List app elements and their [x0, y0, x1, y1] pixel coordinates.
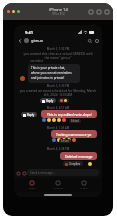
staticText: Send a message... [30, 171, 56, 175]
button[interactable]: Profile [75, 180, 93, 192]
staticText: Profile [80, 186, 88, 189]
staticText: you created this chat as a virtual GENES… [17, 52, 99, 60]
staticText: Reply [27, 113, 35, 117]
staticText: Edited [61, 139, 69, 143]
button[interactable]: Chats [23, 180, 41, 192]
button[interactable]: Edited [59, 139, 71, 143]
staticText: March 4, 1:46 AM [14, 126, 102, 130]
staticText: March 3, 1:02 PM [14, 47, 102, 51]
button[interactable]: Edited [69, 119, 81, 123]
staticText: March 4, 4:51 AM [14, 106, 102, 110]
button[interactable]: Close window [7, 10, 10, 13]
staticText: Calendar [53, 186, 64, 189]
button[interactable]: Take screenshot [96, 9, 101, 14]
button[interactable]: Search [87, 38, 93, 44]
staticText: Edited [71, 119, 79, 123]
button[interactable]: Maximize window [17, 10, 20, 13]
staticText: iPhone 14 [49, 7, 68, 12]
button[interactable] [58, 98, 69, 103]
staticText: March 3, 5:30 PM [14, 84, 102, 88]
button[interactable]: Minimize window [12, 10, 15, 13]
button[interactable]: Calendar [49, 180, 67, 192]
staticText: 3 replies [69, 162, 81, 166]
staticText: Reply [46, 99, 54, 103]
button[interactable]: Device settings [104, 9, 109, 14]
button[interactable]: More options [94, 38, 100, 44]
staticText: This is my edited note-dope! [47, 112, 92, 117]
button[interactable]: Back [17, 38, 23, 44]
button[interactable]: Send a message... [27, 169, 99, 176]
staticText: Deleted message [65, 154, 93, 159]
button[interactable]: Testing namesauce yo [51, 130, 97, 138]
staticText: Chats [29, 186, 36, 189]
button[interactable]: This is your private chat, where you can… [28, 64, 80, 83]
button[interactable]: 3 replies [63, 161, 83, 166]
staticText: March 4, 6:28 PM [14, 147, 102, 151]
staticText: gimux [31, 38, 44, 43]
button[interactable]: Rotate device [88, 9, 93, 14]
staticText: you created an event scheduled for Monda… [15, 89, 101, 97]
button[interactable]: This is my edited note-dope! [41, 110, 97, 118]
staticText: userrobot [30, 59, 44, 63]
button[interactable]: Add attachment [21, 170, 27, 176]
staticText: 9:41 [25, 30, 33, 35]
button[interactable]: Reply [40, 98, 56, 103]
button[interactable]: Camera [15, 170, 21, 176]
button[interactable]: Reply [21, 112, 37, 117]
staticText: This is your private chat, where you can… [31, 66, 72, 80]
staticText: Testing namesauce yo [56, 132, 92, 137]
button[interactable]: Deleted message [60, 152, 97, 160]
staticText: 375 x 812 [52, 12, 65, 16]
